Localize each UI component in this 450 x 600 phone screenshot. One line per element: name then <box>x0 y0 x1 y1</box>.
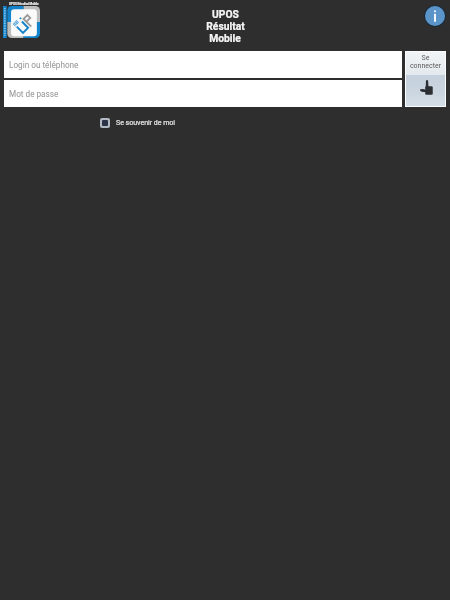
button[interactable]: Se souvenir de moi <box>100 118 176 128</box>
button[interactable]: Mot de passe <box>4 80 402 107</box>
button[interactable]: Informations <box>424 5 446 27</box>
staticText: Se connecter <box>405 54 446 70</box>
staticText: Résultat <box>206 20 245 32</box>
staticText: Se souvenir de moi <box>116 119 176 127</box>
staticText: UPOS <box>212 8 239 20</box>
button[interactable]: Login ou téléphone <box>4 51 402 78</box>
staticText: Login ou téléphone <box>9 60 79 70</box>
staticText: Mobile <box>209 32 241 44</box>
button[interactable]: Se connecter <box>405 51 446 107</box>
staticText: Mot de passe <box>9 89 59 99</box>
staticText: UPOS Résultat Mobile <box>9 2 39 6</box>
